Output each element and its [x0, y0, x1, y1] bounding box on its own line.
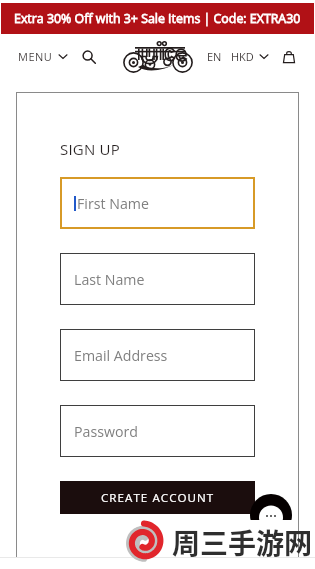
button[interactable]: CREATE ACCOUNT — [60, 481, 255, 514]
button[interactable]: HKD — [231, 49, 268, 64]
button[interactable]: First Name — [60, 177, 255, 229]
button[interactable]: MENU — [18, 49, 67, 64]
staticText: Email Address — [74, 346, 168, 365]
button[interactable]: Search — [78, 46, 100, 68]
staticText: First Name — [77, 194, 149, 213]
staticText: Extra 30% Off with 3+ Sale Items | Code:… — [14, 10, 301, 27]
button[interactable]: Chat — [249, 494, 293, 520]
staticText: CREATE ACCOUNT — [101, 490, 215, 506]
staticText: 周三手游网 — [172, 522, 313, 563]
button[interactable]: Last Name — [60, 253, 255, 305]
button[interactable]: Email Address — [60, 329, 255, 381]
button[interactable]: Cart — [279, 47, 299, 67]
staticText: MENU — [18, 49, 53, 64]
button[interactable]: EN — [207, 49, 222, 64]
staticText: HKD — [231, 49, 254, 64]
staticText: Last Name — [74, 270, 145, 289]
staticText: SIGN UP — [60, 139, 120, 159]
button[interactable]: Extra 30% Off with 3+ Sale Items | Code:… — [1, 3, 314, 34]
button[interactable]: Password — [60, 405, 255, 457]
staticText: Password — [74, 422, 138, 441]
